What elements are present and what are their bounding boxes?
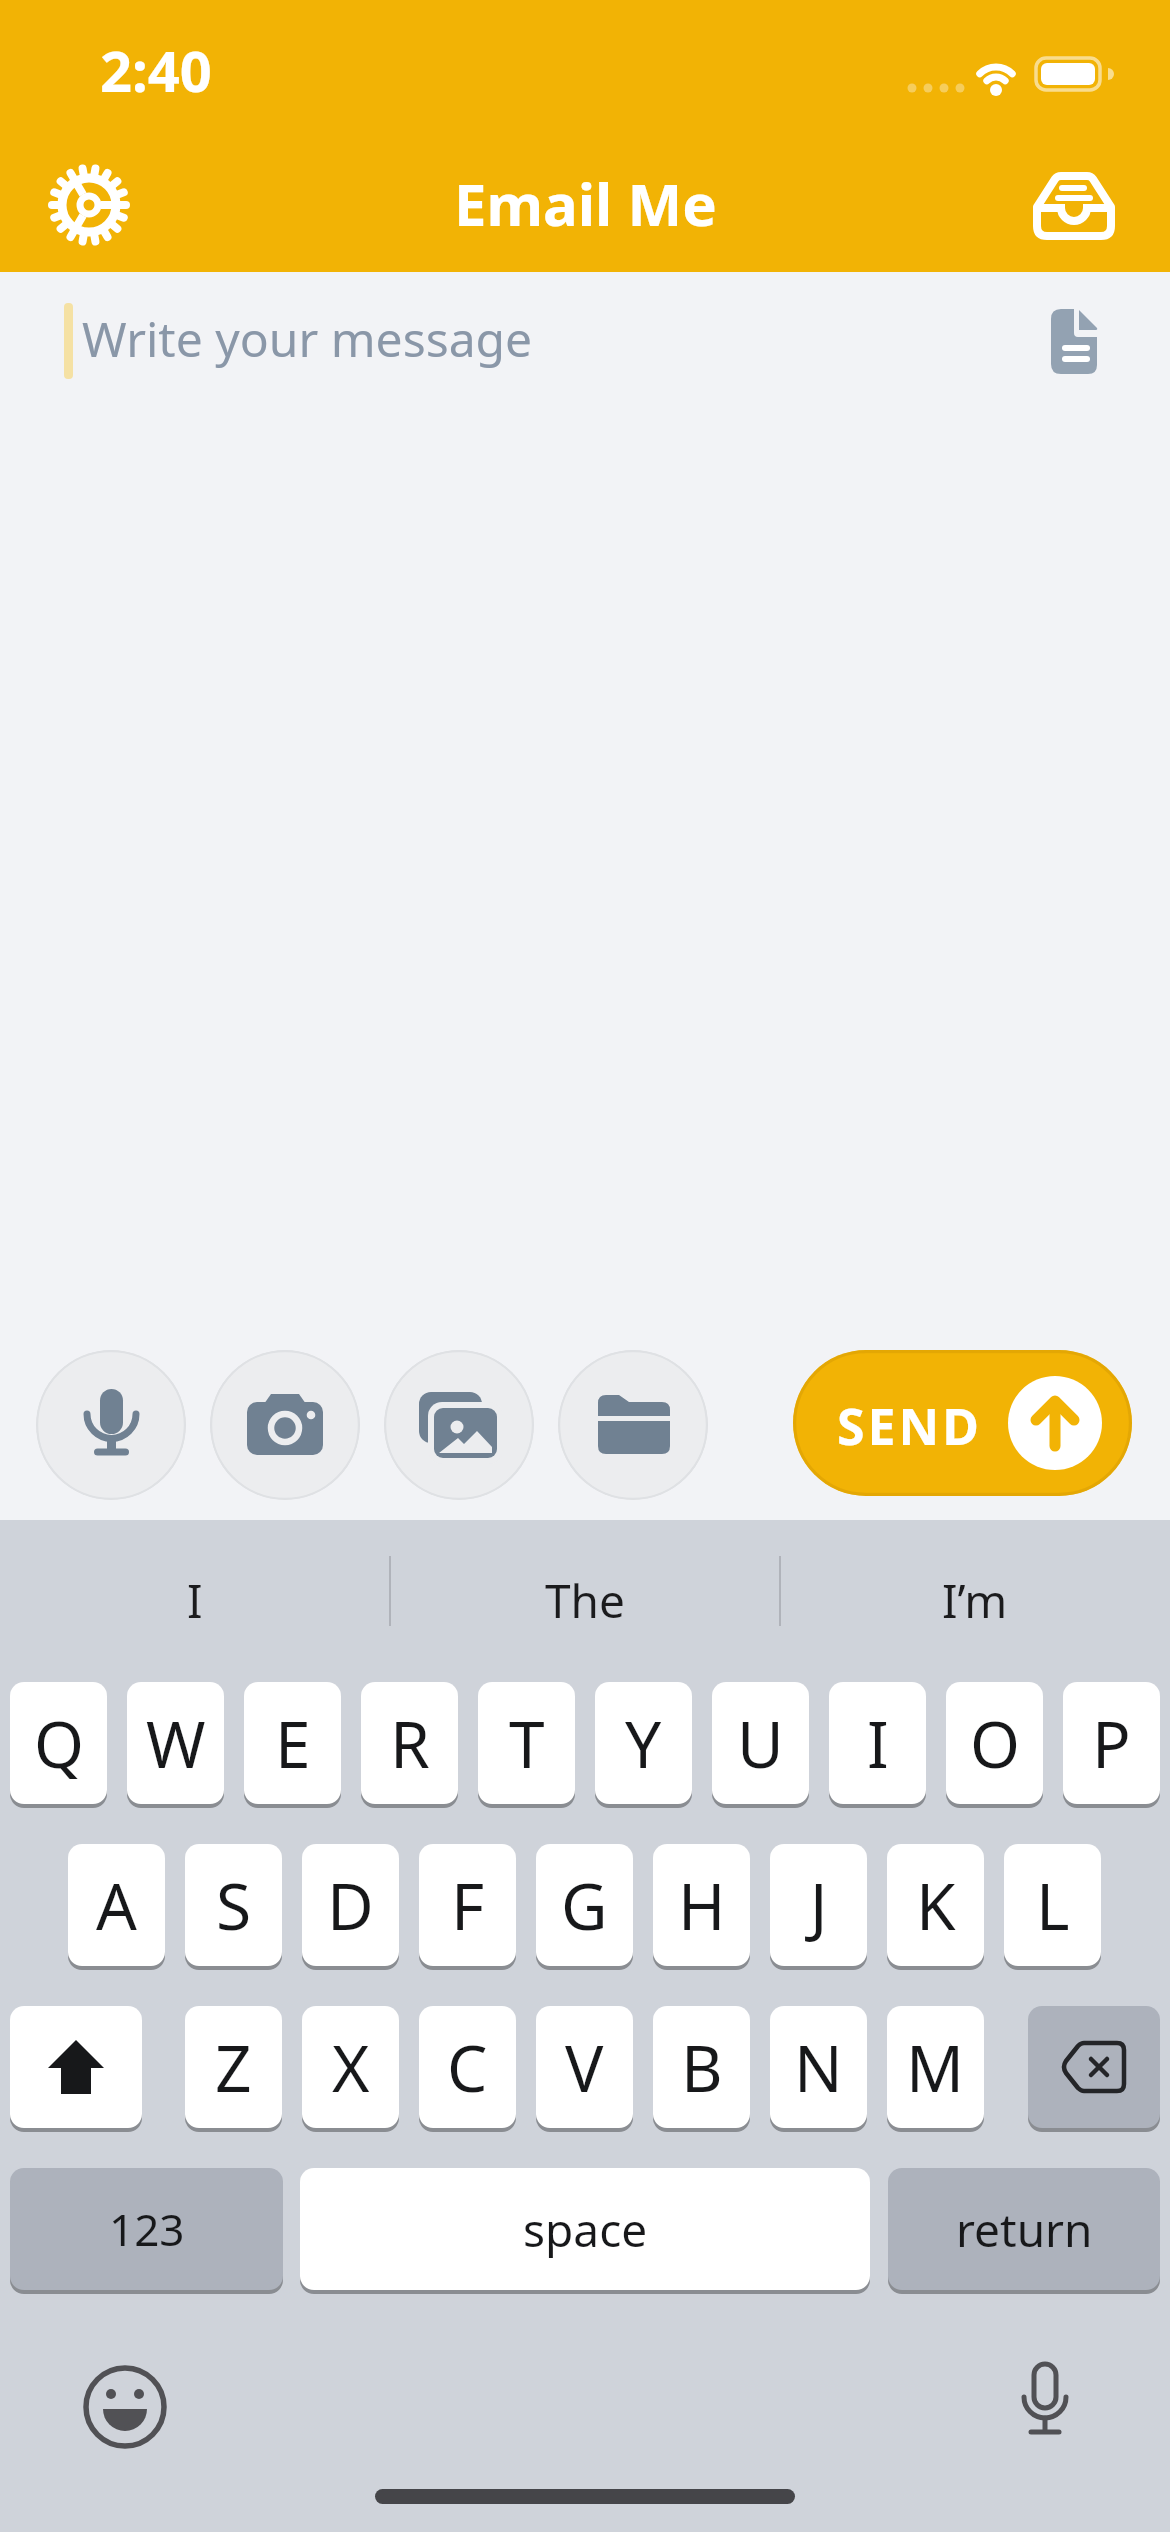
button[interactable]: Q: [10, 1682, 107, 1804]
button[interactable]: [384, 1350, 534, 1500]
button[interactable]: S: [185, 1844, 282, 1966]
button[interactable]: G: [536, 1844, 633, 1966]
staticText: SEND: [837, 1392, 982, 1460]
button[interactable]: [990, 2350, 1100, 2460]
button[interactable]: [42, 158, 136, 252]
staticText: space: [523, 2198, 648, 2261]
staticText: Z: [215, 2024, 252, 2111]
staticText: T: [509, 1700, 545, 1787]
button[interactable]: 123: [10, 2168, 283, 2290]
button[interactable]: [1028, 2006, 1160, 2128]
staticText: Q: [34, 1700, 84, 1787]
button[interactable]: space: [300, 2168, 870, 2290]
button[interactable]: L: [1004, 1844, 1101, 1966]
staticText: V: [565, 2024, 604, 2111]
button[interactable]: [210, 1350, 360, 1500]
staticText: U: [737, 1700, 784, 1787]
staticText: I: [867, 1700, 889, 1787]
button[interactable]: R: [361, 1682, 458, 1804]
staticText: N: [794, 2024, 843, 2111]
staticText: D: [327, 1862, 374, 1949]
button[interactable]: SEND: [793, 1350, 1132, 1496]
staticText: C: [447, 2024, 488, 2111]
staticText: B: [681, 2024, 723, 2111]
button[interactable]: D: [302, 1844, 399, 1966]
button[interactable]: V: [536, 2006, 633, 2128]
staticText: I’m: [942, 1569, 1008, 1632]
staticText: X: [332, 2024, 370, 2111]
staticText: Y: [625, 1700, 662, 1787]
staticText: M: [906, 2024, 965, 2111]
button[interactable]: K: [887, 1844, 984, 1966]
button[interactable]: I: [829, 1682, 926, 1804]
button[interactable]: C: [419, 2006, 516, 2128]
button[interactable]: A: [68, 1844, 165, 1966]
staticText: P: [1092, 1700, 1131, 1787]
staticText: R: [390, 1700, 430, 1787]
button[interactable]: J: [770, 1844, 867, 1966]
button[interactable]: X: [302, 2006, 399, 2128]
button[interactable]: The: [390, 1555, 780, 1645]
button[interactable]: E: [244, 1682, 341, 1804]
staticText: 2:40: [100, 32, 212, 108]
button[interactable]: [558, 1350, 708, 1500]
button[interactable]: [10, 2006, 142, 2128]
staticText: G: [561, 1862, 608, 1949]
button[interactable]: I’m: [780, 1555, 1170, 1645]
button[interactable]: P: [1063, 1682, 1160, 1804]
button[interactable]: F: [419, 1844, 516, 1966]
button[interactable]: W: [127, 1682, 224, 1804]
staticText: A: [96, 1862, 137, 1949]
button[interactable]: O: [946, 1682, 1043, 1804]
button[interactable]: B: [653, 2006, 750, 2128]
button[interactable]: H: [653, 1844, 750, 1966]
staticText: The: [545, 1569, 625, 1632]
button[interactable]: Z: [185, 2006, 282, 2128]
button[interactable]: [70, 2352, 180, 2462]
button[interactable]: [1026, 158, 1122, 254]
staticText: O: [970, 1700, 1020, 1787]
staticText: F: [451, 1862, 485, 1949]
staticText: 123: [109, 2199, 185, 2259]
button[interactable]: Y: [595, 1682, 692, 1804]
button[interactable]: [36, 1350, 186, 1500]
staticText: Email Me: [454, 164, 717, 243]
staticText: I: [187, 1569, 203, 1632]
staticText: K: [916, 1862, 956, 1949]
button[interactable]: I: [0, 1555, 390, 1645]
button[interactable]: T: [478, 1682, 575, 1804]
button[interactable]: return: [888, 2168, 1160, 2290]
button[interactable]: [1045, 306, 1107, 378]
staticText: E: [275, 1700, 311, 1787]
staticText: S: [216, 1862, 252, 1949]
staticText: return: [956, 2198, 1093, 2261]
staticText: Write your message: [82, 306, 533, 371]
button[interactable]: N: [770, 2006, 867, 2128]
staticText: W: [146, 1700, 206, 1787]
staticText: J: [810, 1862, 828, 1949]
staticText: H: [678, 1862, 726, 1949]
button[interactable]: U: [712, 1682, 809, 1804]
staticText: L: [1036, 1862, 1070, 1949]
button[interactable]: M: [887, 2006, 984, 2128]
